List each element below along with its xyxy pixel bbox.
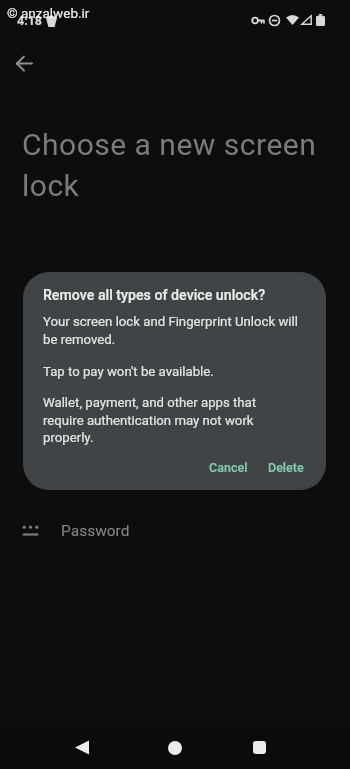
staticText: Tap to pay won't be available. xyxy=(43,364,214,379)
button[interactable] xyxy=(58,725,106,769)
staticText: Wallet, payment, and other apps that req… xyxy=(43,395,257,445)
button[interactable] xyxy=(151,725,199,769)
button[interactable]: Cancel xyxy=(197,452,259,482)
staticText: Remove all types of device unlock? xyxy=(43,287,266,304)
staticText: Choose a new screen lock xyxy=(22,127,317,203)
button[interactable]: Delete xyxy=(257,452,315,482)
staticText: Your screen lock and Fingerprint Unlock … xyxy=(43,314,298,347)
staticText: Delete xyxy=(268,460,304,475)
button[interactable]: Password xyxy=(0,508,350,554)
button[interactable] xyxy=(235,725,283,769)
staticText: 4:18 xyxy=(17,13,43,28)
button[interactable] xyxy=(4,43,44,83)
staticText: © anzalweb.ir xyxy=(7,5,90,21)
staticText: Password xyxy=(61,522,130,540)
staticText: Cancel xyxy=(209,460,248,475)
